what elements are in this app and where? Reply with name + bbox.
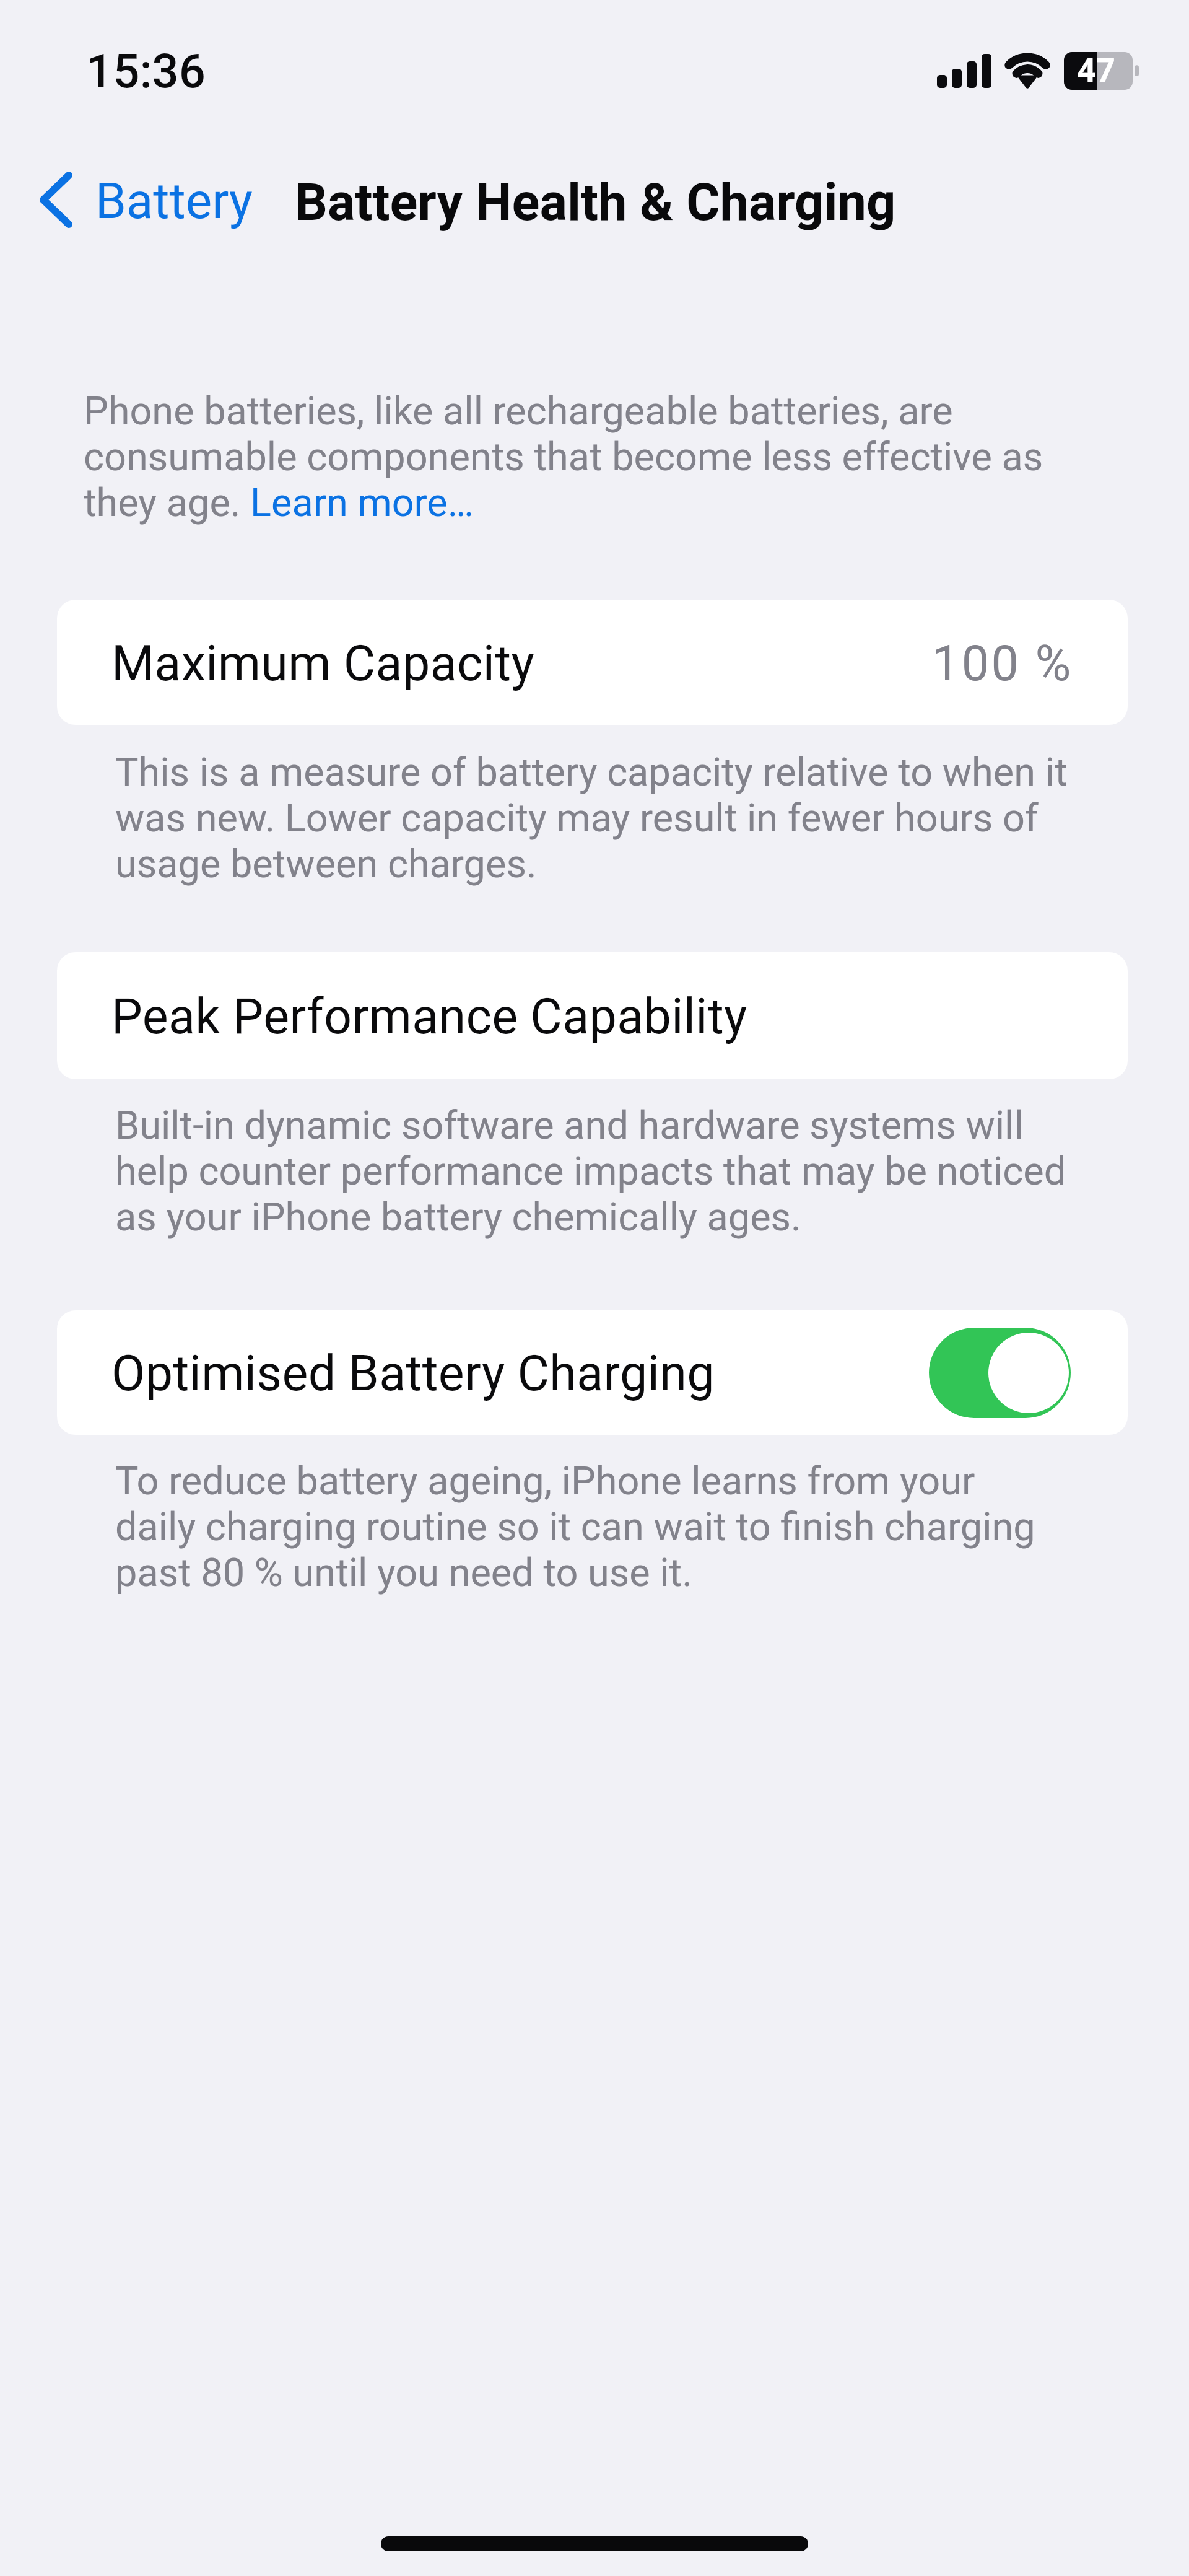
button[interactable]: Peak Performance Capability — [57, 952, 1128, 1079]
staticText: To reduce battery ageing, iPhone learns … — [115, 1458, 1035, 1595]
staticText: Battery — [95, 172, 253, 230]
button[interactable]: Learn more — [240, 481, 395, 527]
button[interactable]: Maximum Capacity — [57, 600, 1128, 725]
staticText: Battery Health & Charging — [295, 172, 896, 232]
other: Wi-Fi — [1004, 53, 1050, 90]
other: Battery 47 percent — [1064, 52, 1141, 90]
other: Cellular signal — [937, 53, 991, 88]
staticText: 47 — [1077, 51, 1115, 90]
button[interactable]: Optimised Battery Charging toggle — [929, 1328, 1071, 1418]
button[interactable]: Optimised Battery Charging — [57, 1310, 1128, 1435]
staticText: Peak Performance Capability — [111, 988, 747, 1046]
staticText: Built-in dynamic software and hardware s… — [115, 1102, 1066, 1240]
staticText: This is a measure of battery capacity re… — [115, 749, 1068, 887]
staticText: 100 % — [932, 635, 1073, 693]
staticText: Maximum Capacity — [111, 635, 535, 693]
staticText: Phone batteries, like all rechargeable b… — [84, 388, 1043, 525]
staticText: 15:36 — [86, 43, 206, 99]
staticText: Optimised Battery Charging — [111, 1345, 715, 1403]
button[interactable]: Battery — [30, 162, 261, 237]
